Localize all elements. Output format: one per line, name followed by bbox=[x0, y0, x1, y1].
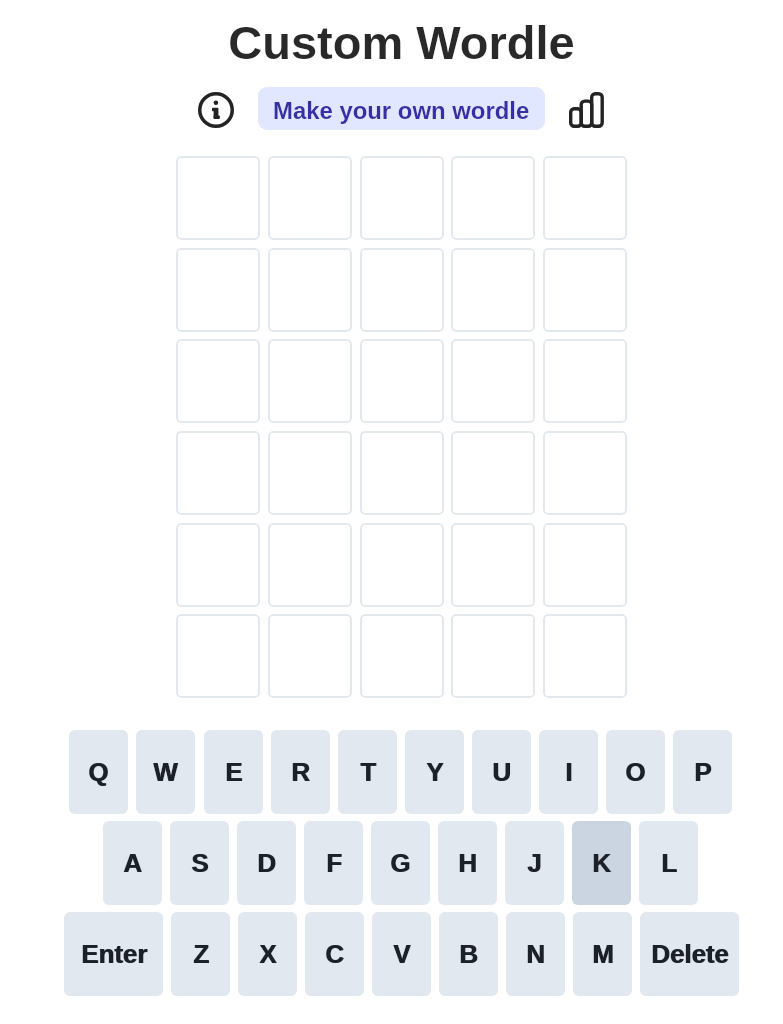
staticText: W bbox=[154, 758, 179, 787]
staticText: Q bbox=[89, 758, 110, 787]
staticText: F bbox=[326, 849, 342, 878]
staticText: D bbox=[258, 849, 277, 878]
staticText: P bbox=[695, 758, 713, 787]
staticText: A bbox=[123, 849, 142, 878]
button[interactable]: D bbox=[237, 821, 296, 905]
button[interactable]: O bbox=[606, 730, 665, 814]
staticText: N bbox=[527, 940, 546, 969]
staticText: L bbox=[661, 849, 677, 878]
button[interactable]: F bbox=[304, 821, 363, 905]
button[interactable]: R bbox=[271, 730, 330, 814]
staticText: Enter bbox=[82, 940, 148, 969]
staticText: B bbox=[459, 940, 478, 969]
staticText: M bbox=[592, 940, 614, 969]
button[interactable]: A bbox=[103, 821, 162, 905]
staticText: H bbox=[459, 849, 478, 878]
staticText: C bbox=[325, 940, 344, 969]
staticText: F bbox=[327, 849, 343, 878]
staticText: L bbox=[662, 849, 678, 878]
button[interactable]: X bbox=[238, 912, 297, 996]
staticText: R bbox=[292, 758, 311, 787]
button[interactable]: N bbox=[506, 912, 565, 996]
staticText: M bbox=[593, 940, 615, 969]
staticText: X bbox=[260, 940, 278, 969]
staticText: I bbox=[565, 758, 573, 787]
button[interactable]: J bbox=[505, 821, 564, 905]
button[interactable]: Statistics bbox=[565, 88, 608, 131]
staticText: T bbox=[360, 758, 376, 787]
staticText: U bbox=[492, 758, 511, 787]
staticText: Delete bbox=[652, 940, 730, 969]
button[interactable]: U bbox=[472, 730, 531, 814]
staticText: U bbox=[493, 758, 512, 787]
button[interactable]: Z bbox=[171, 912, 230, 996]
staticText: I bbox=[566, 758, 574, 787]
button[interactable]: W bbox=[136, 730, 195, 814]
staticText: T bbox=[361, 758, 377, 787]
staticText: K bbox=[593, 849, 612, 878]
staticText: G bbox=[391, 849, 412, 878]
button[interactable]: V bbox=[372, 912, 431, 996]
staticText: K bbox=[592, 849, 611, 878]
button[interactable]: Info bbox=[194, 88, 237, 131]
staticText: A bbox=[124, 849, 143, 878]
staticText: Q bbox=[88, 758, 109, 787]
staticText: B bbox=[460, 940, 479, 969]
button[interactable]: Y bbox=[405, 730, 464, 814]
staticText: Y bbox=[426, 758, 444, 787]
button[interactable]: Make your own wordle bbox=[258, 87, 545, 130]
staticText: O bbox=[625, 758, 646, 787]
button[interactable]: C bbox=[305, 912, 364, 996]
staticText: Z bbox=[194, 940, 210, 969]
staticText: Y bbox=[427, 758, 445, 787]
button[interactable]: L bbox=[639, 821, 698, 905]
staticText: J bbox=[527, 849, 542, 878]
staticText: Make your own wordle bbox=[273, 97, 530, 124]
staticText: O bbox=[626, 758, 647, 787]
staticText: J bbox=[528, 849, 543, 878]
staticText: W bbox=[153, 758, 178, 787]
button[interactable]: Enter bbox=[64, 912, 163, 996]
staticText: Custom Wordle bbox=[228, 16, 575, 69]
button[interactable]: Q bbox=[69, 730, 128, 814]
staticText: E bbox=[225, 758, 243, 787]
staticText: S bbox=[192, 849, 210, 878]
button[interactable]: M bbox=[573, 912, 632, 996]
button[interactable]: G bbox=[371, 821, 430, 905]
staticText: R bbox=[291, 758, 310, 787]
staticText: Delete bbox=[651, 940, 729, 969]
staticText: G bbox=[390, 849, 411, 878]
staticText: N bbox=[526, 940, 545, 969]
staticText: Z bbox=[193, 940, 209, 969]
staticText: V bbox=[394, 940, 412, 969]
staticText: D bbox=[257, 849, 276, 878]
staticText: H bbox=[458, 849, 477, 878]
button[interactable]: E bbox=[204, 730, 263, 814]
staticText: Enter bbox=[81, 940, 147, 969]
staticText: P bbox=[694, 758, 712, 787]
button[interactable]: P bbox=[673, 730, 732, 814]
button[interactable]: T bbox=[338, 730, 397, 814]
staticText: C bbox=[326, 940, 345, 969]
button[interactable]: I bbox=[539, 730, 598, 814]
button[interactable]: B bbox=[439, 912, 498, 996]
staticText: X bbox=[259, 940, 277, 969]
staticText: V bbox=[393, 940, 411, 969]
button[interactable]: Delete bbox=[640, 912, 739, 996]
button[interactable]: S bbox=[170, 821, 229, 905]
button[interactable]: H bbox=[438, 821, 497, 905]
staticText: E bbox=[226, 758, 244, 787]
button[interactable]: K bbox=[572, 821, 631, 905]
staticText: S bbox=[191, 849, 209, 878]
